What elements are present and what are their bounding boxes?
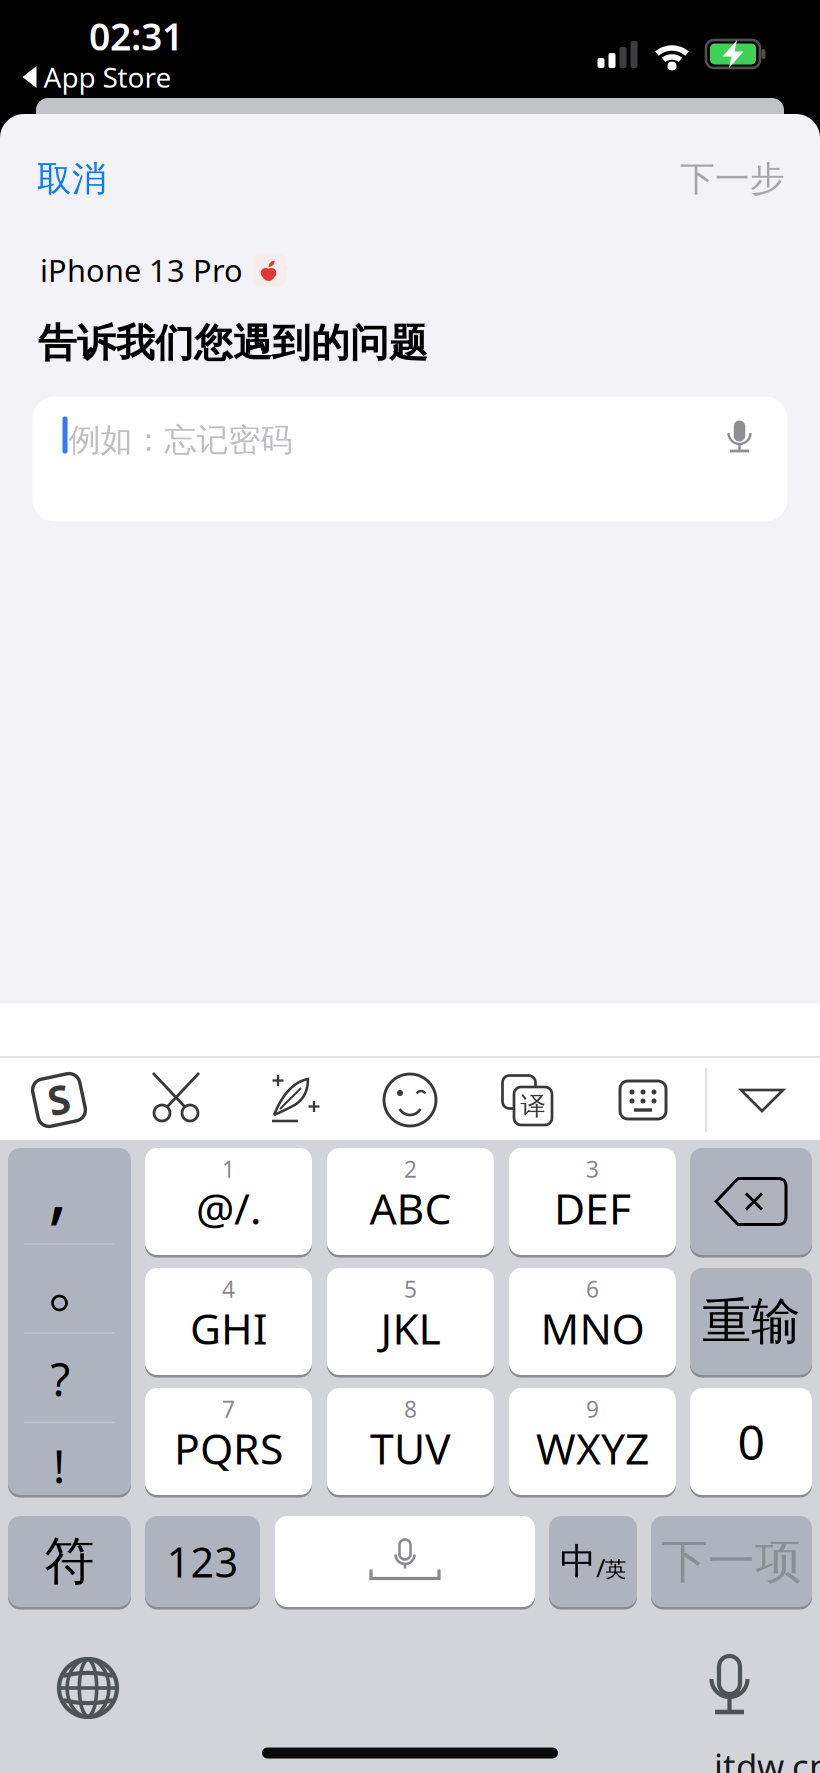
staticText: 英 — [605, 1556, 626, 1583]
button[interactable]: 下一步 — [680, 158, 785, 200]
staticText: ! — [53, 1436, 65, 1496]
button[interactable]: 5 — [327, 1268, 494, 1375]
button[interactable]: 123 — [145, 1516, 260, 1607]
staticText: MNO — [540, 1300, 644, 1356]
button[interactable]: 1 — [145, 1148, 312, 1255]
button[interactable] — [144, 1068, 208, 1132]
staticText: itdw.cn — [714, 1743, 820, 1773]
staticText: 符 — [44, 1530, 95, 1593]
button[interactable]: 符 — [8, 1516, 131, 1607]
button[interactable]: 9 — [509, 1388, 676, 1495]
button[interactable]: 下一项 — [651, 1516, 812, 1607]
staticText: TUV — [370, 1420, 451, 1476]
button[interactable]: App Store — [22, 58, 171, 96]
staticText: 5 — [404, 1274, 417, 1304]
button[interactable]: 4 — [145, 1268, 312, 1375]
staticText: WXYZ — [536, 1420, 649, 1476]
staticText: 123 — [166, 1534, 238, 1589]
staticText: 7 — [222, 1394, 235, 1424]
staticText: ABC — [369, 1180, 451, 1236]
button[interactable] — [707, 1656, 751, 1718]
staticText: / — [596, 1551, 605, 1584]
staticText: 4 — [222, 1274, 235, 1304]
button[interactable] — [690, 1148, 812, 1255]
button[interactable]: 6 — [509, 1268, 676, 1375]
staticText: 1 — [222, 1154, 235, 1184]
button[interactable] — [56, 1656, 120, 1720]
button[interactable]: 中 — [549, 1516, 637, 1607]
staticText: JKL — [380, 1300, 440, 1356]
staticText: GHI — [190, 1300, 267, 1356]
staticText: DEF — [554, 1180, 631, 1236]
staticText: 3 — [586, 1154, 599, 1184]
staticText: ? — [50, 1349, 70, 1409]
staticText: 2 — [404, 1154, 417, 1184]
staticText: 8 — [404, 1394, 417, 1424]
staticText: S — [48, 1072, 70, 1125]
button[interactable]: 例如：忘记密码 — [32, 396, 787, 521]
button[interactable]: 8 — [327, 1388, 494, 1495]
button[interactable]: 2 — [327, 1148, 494, 1255]
button[interactable]: 取消 — [37, 158, 107, 200]
staticText: 例如：忘记密码 — [68, 420, 292, 460]
staticText: 下一项 — [661, 1533, 802, 1590]
staticText: App Store — [43, 58, 171, 96]
button[interactable] — [261, 1068, 325, 1132]
button[interactable] — [275, 1516, 535, 1607]
staticText: 6 — [586, 1274, 599, 1304]
staticText: 02:31 — [89, 11, 183, 61]
button[interactable]: 0 — [690, 1388, 812, 1495]
staticText: 重输 — [702, 1291, 800, 1352]
button[interactable] — [730, 1068, 794, 1132]
staticText: 0 — [737, 1410, 764, 1473]
button[interactable]: 译 — [495, 1068, 559, 1132]
button[interactable]: 重输 — [690, 1268, 812, 1375]
button[interactable] — [611, 1068, 675, 1132]
button[interactable]: 3 — [509, 1148, 676, 1255]
staticText: , — [48, 1137, 68, 1236]
button[interactable]: 7 — [145, 1388, 312, 1495]
button[interactable] — [378, 1068, 442, 1132]
staticText: 取消 — [37, 158, 107, 200]
button[interactable]: , — [8, 1148, 131, 1495]
staticText: 下一步 — [680, 158, 785, 200]
staticText: 中 — [560, 1539, 596, 1584]
staticText: 9 — [586, 1394, 599, 1424]
staticText: PQRS — [174, 1420, 283, 1476]
staticText: @/. — [196, 1180, 261, 1236]
staticText: 告诉我们您遇到的问题 — [38, 319, 428, 367]
button[interactable]: S — [27, 1068, 91, 1132]
staticText: 译 — [520, 1090, 545, 1121]
staticText: iPhone 13 Pro — [40, 250, 243, 290]
